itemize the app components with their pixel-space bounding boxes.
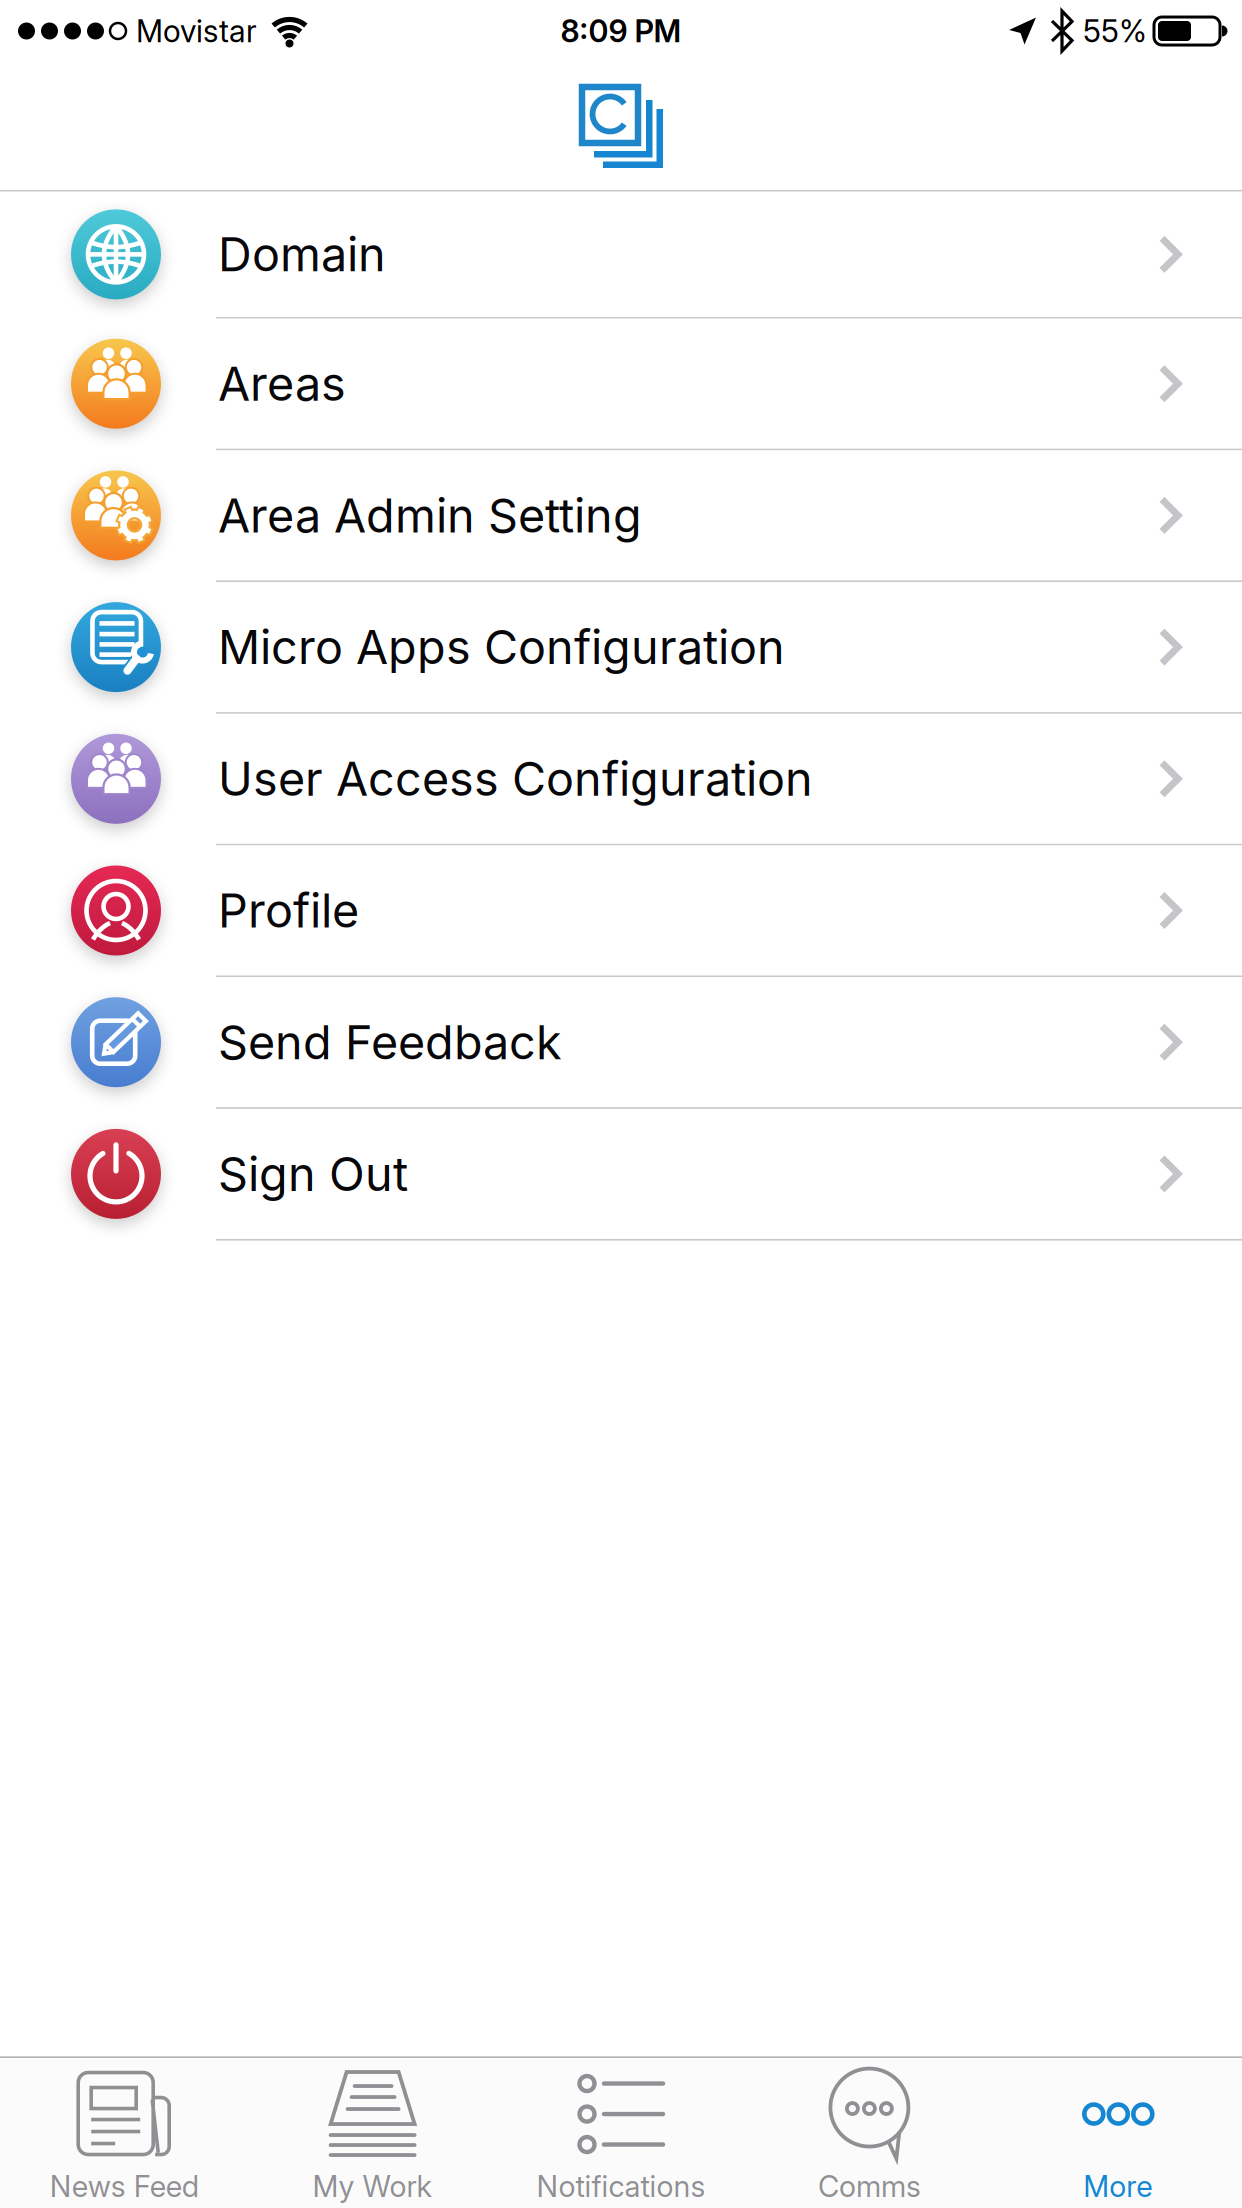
button[interactable]: Areas — [0, 319, 1242, 450]
staticText: Micro Apps Configuration — [218, 620, 785, 675]
staticText: 8:09 PM — [560, 13, 681, 49]
staticText: Profile — [218, 883, 359, 938]
staticText: Areas — [218, 356, 346, 411]
button[interactable]: Sign Out — [0, 1109, 1242, 1241]
staticText: 55% — [1083, 13, 1147, 49]
button[interactable]: Micro Apps Configuration — [0, 582, 1242, 714]
staticText: Domain — [218, 227, 386, 282]
button[interactable]: Comms — [745, 2070, 994, 2204]
button[interactable]: Notifications — [497, 2070, 745, 2204]
staticText: News Feed — [50, 2169, 199, 2204]
staticText: User Access Configuration — [218, 751, 813, 806]
staticText: Send Feedback — [218, 1015, 562, 1070]
button[interactable]: More — [994, 2070, 1242, 2204]
staticText: Area Admin Setting — [218, 488, 642, 543]
button[interactable]: Domain — [0, 192, 1242, 319]
button[interactable]: Area Admin Setting — [0, 450, 1242, 582]
staticText: Movistar — [136, 13, 257, 49]
button[interactable]: Profile — [0, 845, 1242, 977]
staticText: Comms — [818, 2169, 921, 2204]
staticText: My Work — [313, 2169, 433, 2204]
staticText: More — [1083, 2169, 1152, 2204]
button[interactable]: News Feed — [0, 2070, 248, 2204]
button[interactable]: User Access Configuration — [0, 714, 1242, 845]
staticText: Notifications — [536, 2169, 705, 2204]
button[interactable]: Send Feedback — [0, 977, 1242, 1109]
staticText: Sign Out — [218, 1146, 408, 1201]
button[interactable]: My Work — [248, 2070, 497, 2204]
